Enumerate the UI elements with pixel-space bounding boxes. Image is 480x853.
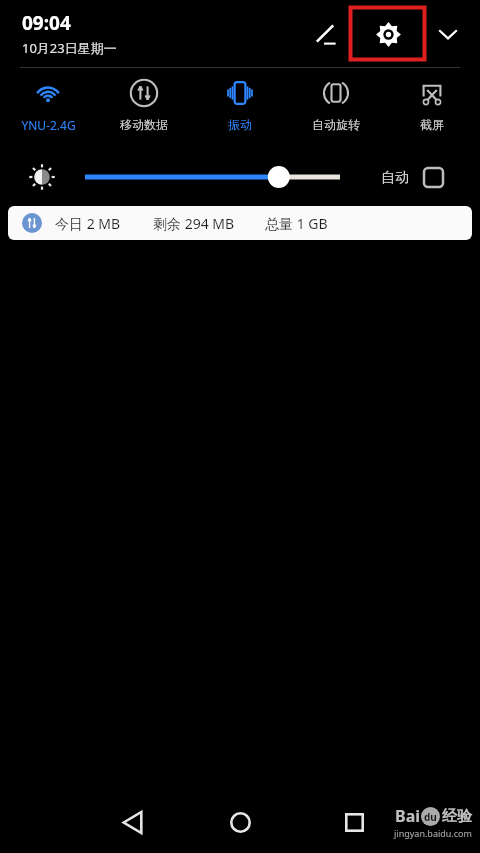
button[interactable]: Brightness — [26, 161, 58, 193]
staticText: 经验 — [442, 807, 472, 826]
button[interactable]: YNU-2.4G — [0, 78, 96, 152]
button[interactable]: Settings — [366, 12, 410, 56]
button[interactable]: Back — [108, 798, 156, 846]
staticText: YNU-2.4G — [21, 117, 76, 133]
staticText: 剩余 294 MB — [153, 214, 235, 233]
button[interactable]: 自动旋转 — [288, 78, 384, 152]
button[interactable]: 移动数据 — [96, 78, 192, 152]
staticText: 自动旋转 — [312, 117, 360, 132]
staticText: 今日 2 MB — [55, 214, 121, 233]
staticText: 振动 — [228, 117, 252, 132]
staticText: jingyan.baidu.com — [394, 827, 472, 839]
button[interactable]: Recents — [330, 798, 378, 846]
staticText: 总量 1 GB — [265, 214, 328, 233]
button[interactable]: Home — [216, 798, 264, 846]
button[interactable]: Expand — [426, 12, 470, 56]
staticText: 自动 — [381, 169, 409, 187]
staticText: du — [424, 810, 437, 824]
button[interactable]: 振动 — [192, 78, 288, 152]
staticText: 截屏 — [420, 117, 444, 132]
staticText: Bai — [395, 805, 421, 827]
button[interactable]: 自动 — [381, 167, 444, 188]
button[interactable]: 今日 2 MB — [8, 206, 472, 240]
staticText: 09:04 — [22, 10, 71, 36]
button[interactable]: Edit — [303, 11, 349, 57]
staticText: 移动数据 — [120, 117, 168, 132]
button[interactable]: Brightness slider — [80, 160, 345, 194]
button[interactable]: 截屏 — [384, 78, 480, 152]
staticText: 10月23日星期一 — [22, 39, 117, 57]
